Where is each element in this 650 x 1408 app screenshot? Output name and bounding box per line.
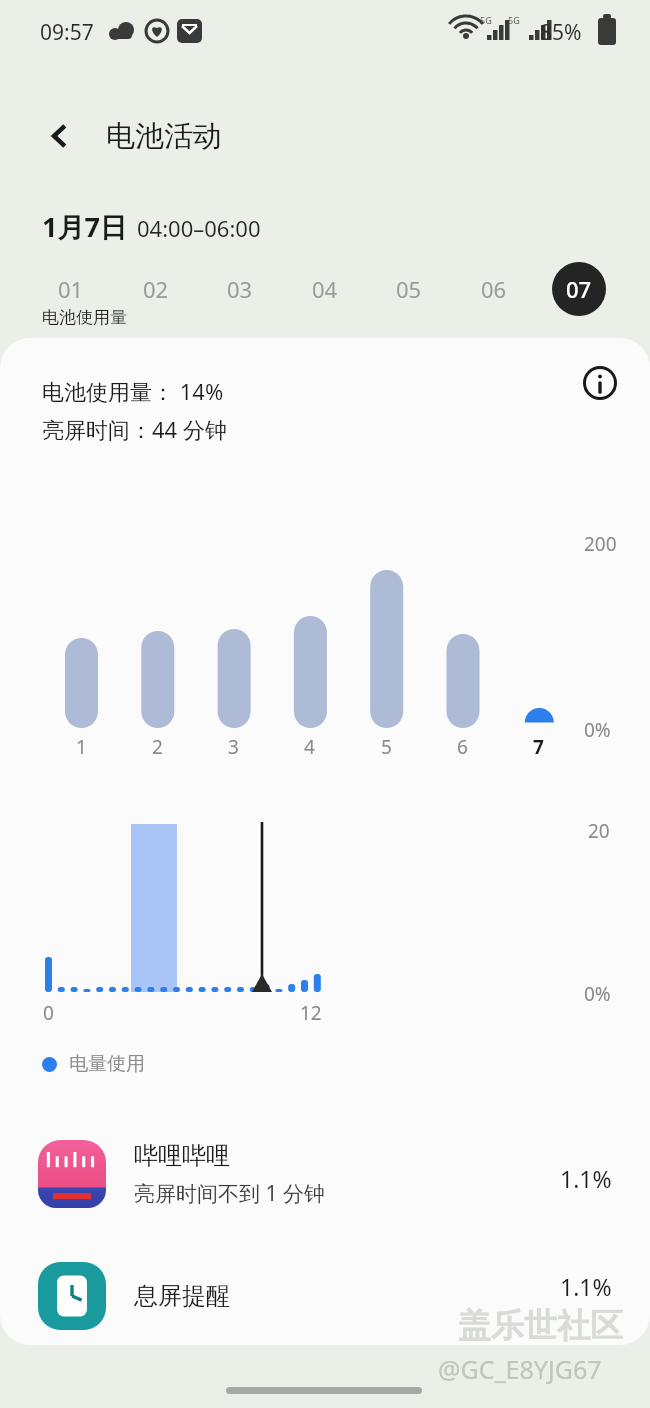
staticText: 6 xyxy=(457,734,468,760)
button[interactable]: 哔哩哔哩 xyxy=(0,1128,650,1220)
staticText: 200 xyxy=(584,531,617,557)
staticText: 20 xyxy=(588,818,610,844)
staticText: 05 xyxy=(396,274,422,304)
staticText: 02 xyxy=(143,274,169,304)
staticText: 哔哩哔哩 xyxy=(134,1141,230,1171)
button[interactable]: 04 xyxy=(298,262,352,316)
staticText: 7 xyxy=(533,734,544,760)
staticText: 电池活动 xyxy=(106,118,222,155)
button[interactable]: 05 xyxy=(382,262,436,316)
staticText: 09:57 xyxy=(40,18,94,47)
button[interactable]: 07 xyxy=(552,262,606,316)
button[interactable]: Information xyxy=(576,359,624,407)
staticText: 盖乐世社区 xyxy=(458,1305,623,1347)
staticText: 5G xyxy=(480,14,492,26)
staticText: 1.1% xyxy=(560,1163,612,1194)
button[interactable]: 01 xyxy=(44,262,98,316)
staticText: 01 xyxy=(58,274,84,304)
button[interactable]: 03 xyxy=(213,262,267,316)
staticText: 电池使用量 xyxy=(42,307,127,328)
staticText: 1.1% xyxy=(560,1271,612,1302)
staticText: 5 xyxy=(381,734,392,760)
staticText: 04:00–06:00 xyxy=(137,213,261,243)
staticText: @GC_E8YJG67 xyxy=(438,1352,602,1386)
staticText: 5G xyxy=(508,14,520,26)
staticText: 4 xyxy=(304,734,315,760)
staticText: 04 xyxy=(312,274,338,304)
staticText: 2 xyxy=(152,734,163,760)
staticText: 12 xyxy=(300,1000,322,1026)
staticText: 亮屏时间不到 1 分钟 xyxy=(134,1179,325,1208)
button[interactable]: 06 xyxy=(467,262,521,316)
staticText: 1 xyxy=(76,734,87,760)
staticText: 85% xyxy=(540,18,582,47)
button[interactable]: 02 xyxy=(129,262,183,316)
staticText: 3 xyxy=(228,734,239,760)
staticText: 电量使用 xyxy=(69,1052,145,1076)
staticText: 电池使用量： 14% xyxy=(42,376,224,406)
staticText: 07 xyxy=(566,274,592,304)
staticText: 1月7日 xyxy=(42,208,127,245)
button[interactable]: Back xyxy=(34,110,86,162)
staticText: 0% xyxy=(584,981,611,1007)
staticText: 0% xyxy=(584,717,611,743)
staticText: 息屏提醒 xyxy=(134,1281,560,1311)
button[interactable]: 息屏提醒 xyxy=(0,1256,650,1336)
staticText: 0 xyxy=(43,1000,54,1026)
staticText: 03 xyxy=(227,274,253,304)
staticText: 亮屏时间：44 分钟 xyxy=(42,414,227,444)
staticText: 06 xyxy=(481,274,507,304)
